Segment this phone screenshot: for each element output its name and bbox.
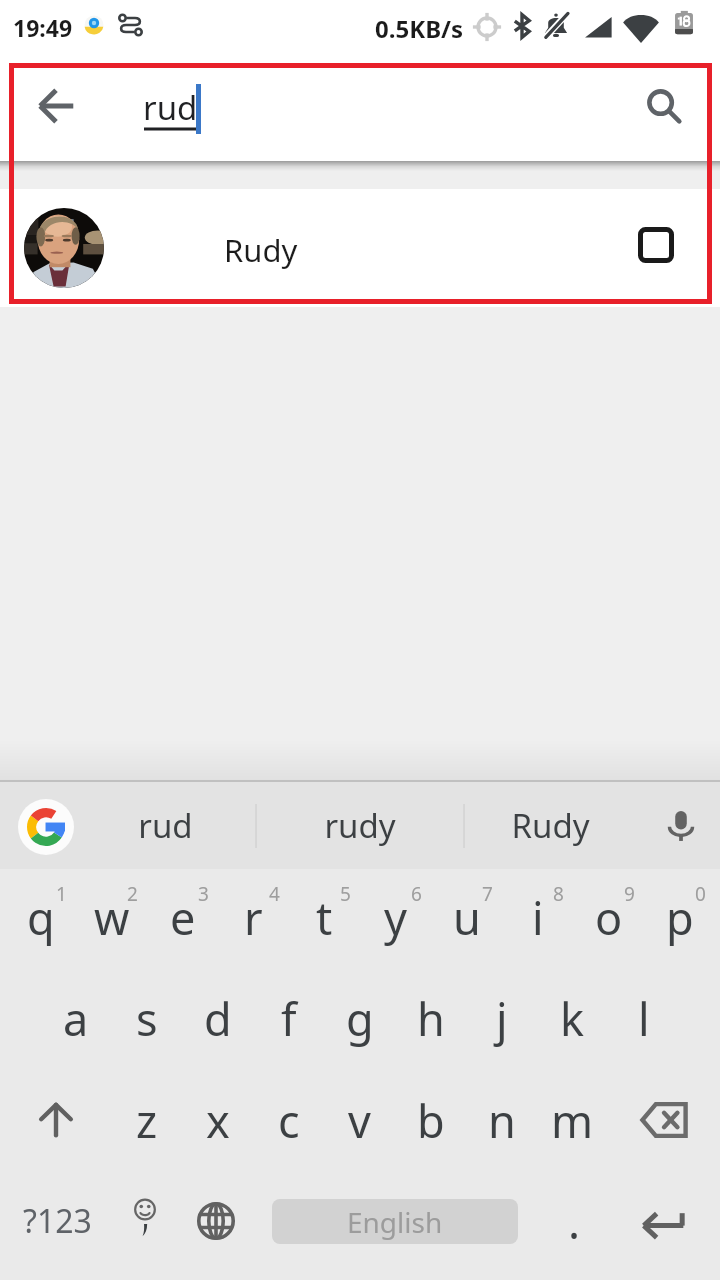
button[interactable]: d <box>182 970 253 1066</box>
staticText: t <box>316 887 333 948</box>
button[interactable]: e <box>147 869 218 965</box>
button[interactable]: r <box>218 869 289 965</box>
staticText: x <box>206 1090 230 1151</box>
staticText: rudy <box>324 803 396 848</box>
button[interactable]: Select Rudy <box>624 213 688 277</box>
button[interactable]: y <box>360 869 431 965</box>
button[interactable]: i <box>502 869 573 965</box>
staticText: Rudy <box>511 803 590 848</box>
button[interactable]: rud <box>74 782 256 869</box>
button[interactable]: c <box>253 1072 324 1168</box>
staticText: y <box>384 887 407 948</box>
button[interactable]: Shift <box>0 1072 111 1168</box>
staticText: 1 <box>56 881 67 907</box>
button[interactable]: m <box>537 1072 608 1168</box>
button[interactable]: f <box>253 970 324 1066</box>
button[interactable]: . <box>524 1173 624 1269</box>
button[interactable]: Rudy <box>464 782 636 869</box>
staticText: ?123 <box>23 1199 92 1243</box>
button[interactable]: q <box>5 869 76 965</box>
button[interactable]: t <box>289 869 360 965</box>
staticText: i <box>532 887 544 948</box>
staticText: 6 <box>411 881 422 907</box>
button[interactable]: k <box>537 970 608 1066</box>
button[interactable]: Emoji keyboard <box>113 1173 177 1269</box>
button[interactable]: p <box>644 869 715 965</box>
staticText: w <box>94 887 130 948</box>
button[interactable]: Rudy <box>0 189 720 307</box>
staticText: . <box>568 1191 581 1252</box>
staticText: a <box>63 988 89 1049</box>
staticText: rud <box>143 85 198 130</box>
button[interactable]: l <box>608 970 679 1066</box>
button[interactable]: rudy <box>256 782 464 869</box>
staticText: z <box>136 1090 158 1151</box>
staticText: e <box>170 887 196 948</box>
staticText: rud <box>138 803 193 848</box>
staticText: u <box>453 887 481 948</box>
staticText: f <box>281 988 297 1049</box>
button[interactable]: Enter <box>616 1173 712 1269</box>
staticText: g <box>346 988 374 1049</box>
button[interactable]: Search <box>632 74 696 138</box>
staticText: o <box>595 887 623 948</box>
staticText: n <box>488 1090 516 1151</box>
button[interactable]: h <box>395 970 466 1066</box>
button[interactable]: w <box>76 869 147 965</box>
staticText: English <box>347 1203 443 1241</box>
button[interactable]: Delete <box>608 1072 720 1168</box>
staticText: j <box>496 988 508 1049</box>
button[interactable]: n <box>466 1072 537 1168</box>
button[interactable]: u <box>431 869 502 965</box>
button[interactable]: z <box>111 1072 182 1168</box>
button[interactable]: g <box>324 970 395 1066</box>
staticText: 0 <box>695 881 706 907</box>
button[interactable]: English <box>272 1173 518 1269</box>
staticText: 0.5KB/s <box>375 12 464 45</box>
button[interactable]: j <box>466 970 537 1066</box>
staticText: 8 <box>553 881 564 907</box>
button[interactable]: a <box>40 970 111 1066</box>
staticText: v <box>348 1090 371 1151</box>
staticText: d <box>204 988 232 1049</box>
button[interactable]: Change keyboard language <box>184 1173 248 1269</box>
staticText: 7 <box>482 881 493 907</box>
staticText: k <box>560 988 585 1049</box>
staticText: 4 <box>269 881 280 907</box>
staticText: s <box>136 988 158 1049</box>
button[interactable]: Back <box>24 74 88 138</box>
staticText: m <box>551 1090 594 1151</box>
button[interactable]: s <box>111 970 182 1066</box>
staticText: 19:49 <box>13 12 73 43</box>
button[interactable]: b <box>395 1072 466 1168</box>
staticText: q <box>27 887 55 948</box>
staticText: 3 <box>198 881 209 907</box>
staticText: 2 <box>127 881 138 907</box>
staticText: c <box>278 1090 300 1151</box>
staticText: b <box>417 1090 445 1151</box>
button[interactable]: Google search <box>18 799 74 855</box>
button[interactable]: Voice input <box>653 798 709 854</box>
button[interactable]: v <box>324 1072 395 1168</box>
staticText: l <box>638 988 650 1049</box>
button[interactable]: x <box>182 1072 253 1168</box>
staticText: r <box>244 887 263 948</box>
button[interactable]: o <box>573 869 644 965</box>
staticText: 9 <box>624 881 635 907</box>
staticText: Rudy <box>224 229 298 271</box>
button[interactable]: ?123 <box>0 1173 114 1269</box>
staticText: p <box>666 887 694 948</box>
staticText: 5 <box>340 881 351 907</box>
staticText: h <box>417 988 445 1049</box>
